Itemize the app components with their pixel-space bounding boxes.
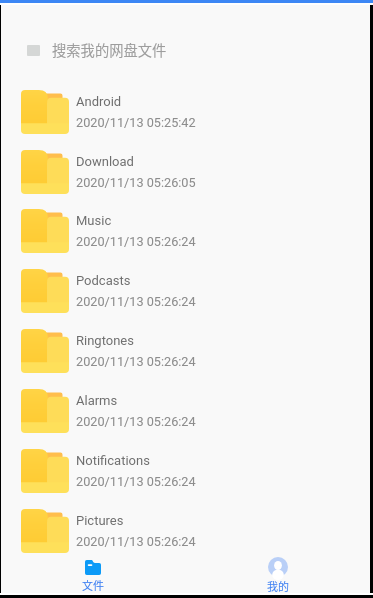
button[interactable]: Pictures: [1, 505, 370, 565]
staticText: 2020/11/13 05:26:24: [76, 414, 196, 429]
button[interactable]: Podcasts: [1, 265, 370, 325]
staticText: 我的: [267, 578, 289, 593]
button[interactable]: Notifications: [1, 445, 370, 505]
button[interactable]: Ringtones: [1, 325, 370, 385]
button[interactable]: 搜索我的网盘文件: [1, 30, 370, 70]
button[interactable]: Android: [1, 86, 370, 146]
staticText: Alarms: [76, 393, 118, 408]
staticText: 搜索我的网盘文件: [52, 39, 167, 60]
staticText: 2020/11/13 05:26:24: [76, 474, 196, 489]
staticText: Music: [76, 213, 112, 228]
staticText: 2020/11/13 05:25:42: [76, 115, 196, 130]
staticText: Podcasts: [76, 273, 131, 288]
staticText: 2020/11/13 05:26:24: [76, 534, 196, 549]
button[interactable]: Download: [1, 146, 370, 206]
staticText: Pictures: [76, 513, 124, 528]
staticText: 2020/11/13 05:26:24: [76, 234, 196, 249]
staticText: Notifications: [76, 453, 150, 468]
button[interactable]: Alarms: [1, 385, 370, 445]
staticText: Ringtones: [76, 333, 134, 348]
staticText: 2020/11/13 05:26:05: [76, 175, 196, 190]
staticText: 文件: [82, 577, 104, 593]
staticText: 2020/11/13 05:26:24: [76, 354, 196, 369]
staticText: Download: [76, 154, 134, 169]
button[interactable]: 文件: [1, 553, 185, 593]
button[interactable]: Music: [1, 205, 370, 265]
staticText: 2020/11/13 05:26:24: [76, 294, 196, 309]
button[interactable]: 我的: [185, 553, 370, 593]
staticText: Android: [76, 94, 122, 109]
